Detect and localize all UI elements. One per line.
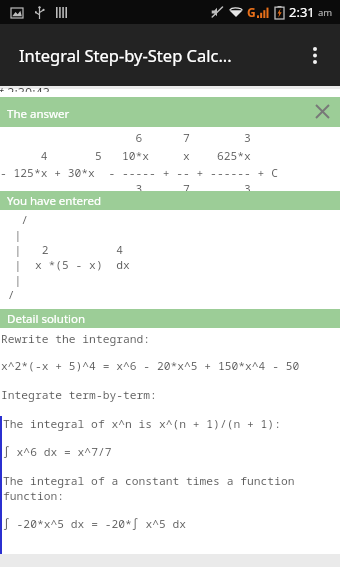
staticText: x^2*(-x + 5)^4 = x^6 - 20*x^5 + 150*x^4 … bbox=[1, 358, 300, 373]
staticText: function: bbox=[3, 488, 65, 503]
staticText: Integral Step-by-Step Calc... bbox=[19, 44, 232, 66]
button[interactable]: More options bbox=[296, 36, 334, 74]
staticText: | bbox=[1, 227, 22, 242]
button[interactable]: Close bbox=[309, 98, 335, 124]
staticText: The integral of a constant times a funct… bbox=[3, 473, 295, 488]
button[interactable]: You have entered bbox=[0, 191, 340, 210]
staticText: G bbox=[247, 4, 256, 20]
button[interactable]: Detail solution bbox=[0, 309, 340, 328]
staticText: am bbox=[318, 6, 333, 19]
staticText: | 2 4 bbox=[1, 242, 124, 257]
staticText: Rewrite the integrand: bbox=[1, 331, 151, 346]
staticText: You have entered bbox=[7, 193, 102, 209]
staticText: # 2:30:43 bbox=[0, 84, 50, 92]
staticText: / bbox=[1, 212, 29, 227]
staticText: 3 7 3 bbox=[0, 181, 251, 191]
staticText: ∫ -20*x^5 dx = -20*∫ x^5 dx bbox=[3, 516, 187, 531]
button[interactable]: # 2:30:43 bbox=[0, 89, 340, 97]
staticText: ∫ x^6 dx = x^7/7 bbox=[3, 444, 112, 459]
staticText: 2:31 bbox=[289, 3, 315, 21]
staticText: Detail solution bbox=[7, 311, 86, 327]
staticText: The integral of x^n is x^(n + 1)/(n + 1)… bbox=[3, 416, 281, 431]
button[interactable]: 6 7 3 bbox=[0, 127, 340, 191]
staticText: - 125*x + 30*x - ----- + -- + ------ + C bbox=[0, 165, 278, 180]
staticText: 4 5 10*x x 625*x bbox=[0, 148, 251, 163]
staticText: Integrate term-by-term: bbox=[1, 387, 157, 402]
button[interactable]: / bbox=[0, 210, 340, 309]
staticText: The answer bbox=[7, 106, 70, 122]
staticText: | bbox=[1, 272, 22, 287]
staticText: | x *(5 - x) dx bbox=[1, 257, 130, 272]
staticText: / bbox=[1, 287, 15, 302]
staticText: 6 7 3 bbox=[0, 130, 251, 145]
